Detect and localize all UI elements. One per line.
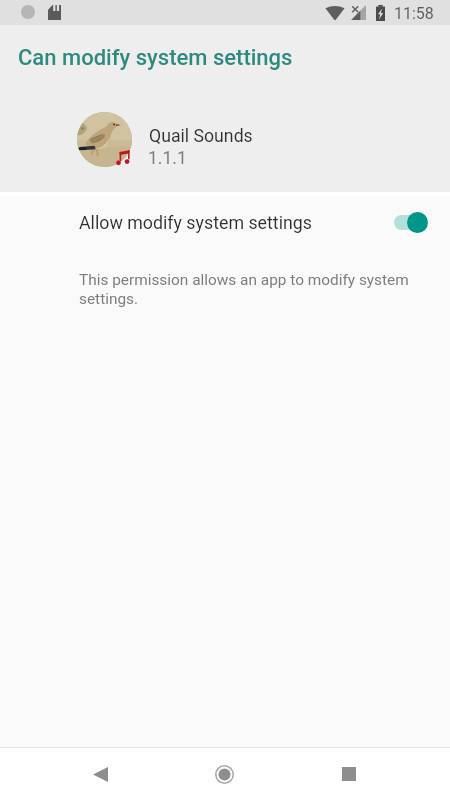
button[interactable]: Allow modify system settings toggle (394, 211, 428, 233)
button[interactable]: Recents (325, 750, 373, 798)
button[interactable]: Back (76, 750, 124, 798)
staticText: Allow modify system settings (79, 212, 394, 233)
staticText: 1.1.1 (148, 148, 187, 169)
staticText: Can modify system settings (18, 45, 293, 71)
staticText: This permission allows an app to modify … (79, 271, 411, 308)
staticText: 11:58 (394, 4, 434, 23)
button[interactable]: Allow modify system settings (0, 196, 450, 248)
staticText: Quail Sounds (149, 126, 253, 147)
button[interactable]: Home (200, 750, 248, 798)
